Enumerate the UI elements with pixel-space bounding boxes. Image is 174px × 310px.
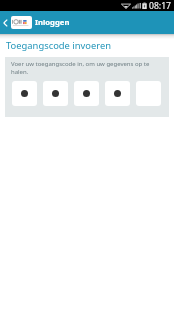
staticText: Toegangscode invoeren xyxy=(6,39,112,52)
button[interactable]: Passcode digit 3 xyxy=(74,81,99,106)
staticText: 08:17 xyxy=(149,0,171,11)
button[interactable]: Passcode digit 2 xyxy=(43,81,68,106)
button[interactable]: Back xyxy=(0,11,11,34)
button[interactable]: Passcode digit 1 xyxy=(12,81,37,106)
button[interactable]: Passcode digit 4 xyxy=(105,81,130,106)
staticText: Inloggen xyxy=(35,17,70,27)
staticText: Voer uw toegangscode in, om uw gegevens … xyxy=(11,60,161,76)
